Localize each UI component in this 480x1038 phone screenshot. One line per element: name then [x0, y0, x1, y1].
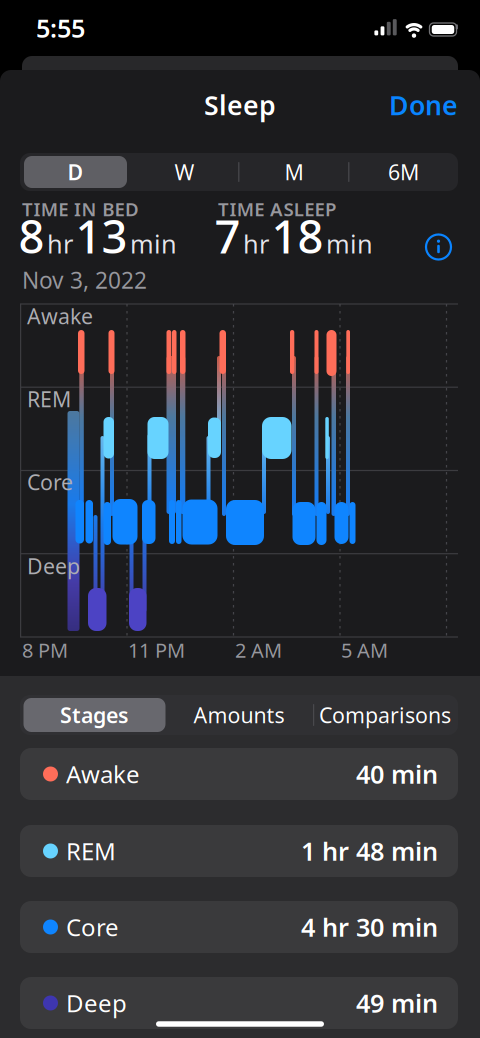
staticText: TIME IN BED: [22, 197, 139, 221]
staticText: 40 min: [356, 757, 438, 791]
button[interactable]: Deep: [20, 977, 458, 1029]
button[interactable]: [424, 233, 452, 261]
button[interactable]: Amounts: [169, 696, 309, 734]
button[interactable]: Core: [20, 901, 458, 953]
button[interactable]: REM: [20, 825, 458, 877]
staticText: 5 AM: [341, 637, 388, 663]
staticText: M: [284, 158, 303, 186]
staticText: Amounts: [193, 701, 284, 729]
staticText: 5:55: [36, 11, 85, 45]
staticText: REM: [66, 835, 116, 867]
staticText: Nov 3, 2022: [22, 265, 147, 295]
button[interactable]: W: [134, 154, 234, 190]
staticText: W: [174, 158, 194, 186]
staticText: Done: [389, 87, 458, 123]
staticText: TIME ASLEEP: [218, 197, 336, 221]
button[interactable]: 6M: [353, 154, 453, 190]
staticText: 13: [75, 206, 127, 266]
staticText: REM: [27, 385, 71, 413]
staticText: min: [130, 227, 177, 260]
button[interactable]: M: [244, 154, 344, 190]
staticText: Core: [66, 911, 119, 943]
staticText: Stages: [60, 701, 129, 729]
staticText: Deep: [66, 987, 127, 1019]
staticText: Core: [27, 468, 73, 496]
staticText: 2 AM: [235, 637, 282, 663]
staticText: min: [326, 227, 373, 260]
staticText: hr: [243, 227, 269, 260]
button[interactable]: Stages: [23, 698, 165, 732]
staticText: D: [67, 158, 83, 186]
staticText: 6M: [388, 158, 419, 186]
staticText: 1 hr 48 min: [301, 834, 438, 868]
staticText: 11 PM: [128, 637, 185, 663]
staticText: Awake: [27, 302, 93, 330]
staticText: 18: [271, 206, 323, 266]
staticText: 8 PM: [22, 637, 68, 663]
button[interactable]: Awake: [20, 748, 458, 800]
staticText: Sleep: [204, 87, 276, 123]
staticText: hr: [47, 227, 73, 260]
staticText: 4 hr 30 min: [301, 910, 438, 944]
button[interactable]: D: [24, 156, 127, 188]
button[interactable]: Done: [378, 85, 458, 125]
staticText: Comparisons: [319, 701, 451, 729]
staticText: 8: [18, 206, 44, 266]
button[interactable]: Comparisons: [314, 696, 456, 734]
staticText: Deep: [27, 552, 80, 580]
staticText: 49 min: [356, 986, 438, 1020]
staticText: Awake: [66, 758, 140, 790]
staticText: 7: [214, 206, 240, 266]
